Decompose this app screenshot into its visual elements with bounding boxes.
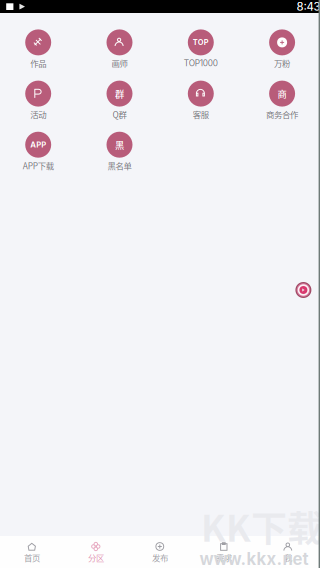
staticText: 客服 (193, 108, 209, 120)
staticText: 商 (278, 87, 287, 100)
staticText: APP (30, 140, 46, 149)
staticText: TOP1000 (184, 58, 218, 68)
button[interactable]: 客服 (161, 81, 241, 127)
button[interactable]: 黑 (79, 132, 159, 178)
button[interactable]: 分区 (64, 536, 128, 568)
button[interactable]: 作品 (0, 29, 78, 75)
staticText: www.kkx.net (199, 549, 308, 568)
staticText: KK下载 (201, 500, 320, 552)
button[interactable]: TOP (161, 29, 241, 75)
staticText: 黑 (115, 138, 124, 151)
staticText: APP下载 (23, 159, 54, 172)
staticText: TOP (193, 38, 209, 47)
button[interactable]: 首页 (0, 536, 64, 568)
staticText: 8:43 (296, 0, 320, 13)
staticText: 分区 (88, 551, 104, 564)
button[interactable]: APP (0, 132, 78, 178)
staticText: 群 (115, 87, 124, 100)
staticText: 作品 (30, 57, 46, 69)
button[interactable]: 画师 (79, 29, 159, 75)
button[interactable]: 我 (256, 536, 320, 568)
button[interactable]: 万粉 (242, 29, 320, 75)
button[interactable]: 需求 (192, 536, 256, 568)
staticText: 商务合作 (266, 108, 298, 120)
staticText: 万粉 (274, 57, 290, 69)
staticText: 活动 (30, 108, 46, 120)
staticText: 发布 (152, 551, 168, 564)
staticText: Q群 (112, 108, 126, 120)
staticText: 需求 (216, 551, 232, 564)
button[interactable]: 发布 (128, 536, 192, 568)
staticText: 我 (284, 551, 292, 564)
staticText: 画师 (111, 57, 127, 69)
button[interactable]: 商 (242, 81, 320, 127)
button[interactable]: Record (295, 281, 312, 298)
button[interactable]: 活动 (0, 81, 78, 127)
staticText: 首页 (24, 551, 40, 564)
staticText: 黑名单 (107, 159, 131, 172)
button[interactable]: 群 (79, 81, 159, 127)
